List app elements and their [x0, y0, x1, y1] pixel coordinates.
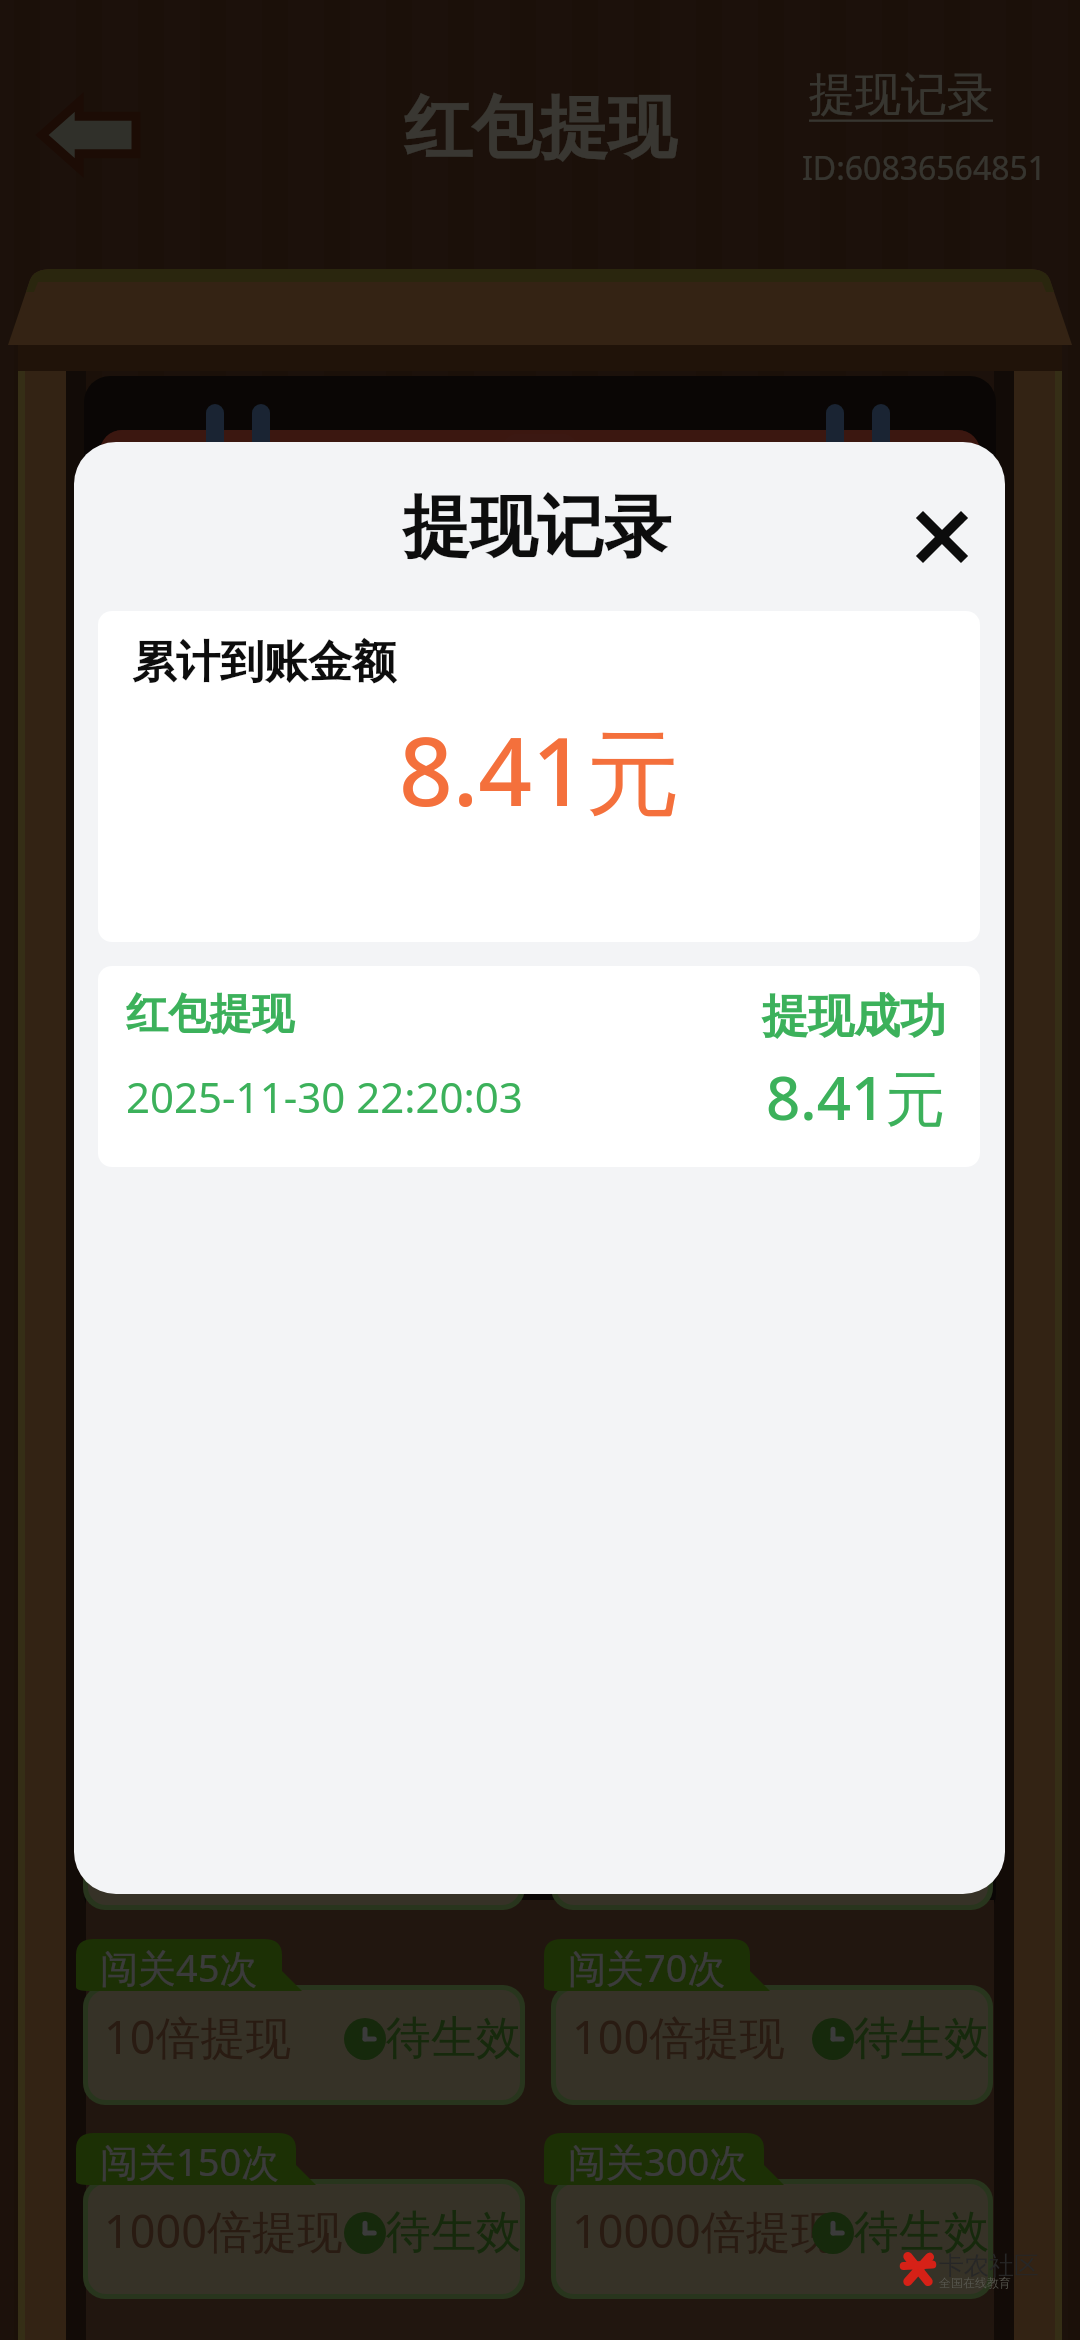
staticText: 待生效 — [854, 2204, 989, 2261]
staticText: 提现记录 — [403, 485, 671, 569]
button[interactable]: Back — [28, 86, 152, 184]
button[interactable]: Close — [892, 487, 992, 587]
staticText: 闯关45次 — [100, 1941, 258, 1993]
staticText: 1000倍提现 — [104, 2200, 342, 2261]
staticText: 闯关70次 — [568, 1941, 726, 1993]
button[interactable]: 100倍提现 — [546, 1939, 993, 2105]
button[interactable]: 10倍提现 — [78, 1939, 525, 2105]
staticText: 8.41元 — [766, 1056, 946, 1138]
staticText: 红包提现 — [126, 988, 294, 1041]
button[interactable]: 1000倍提现 — [78, 2133, 525, 2299]
button[interactable]: 提现记录 — [809, 66, 993, 124]
staticText: 闯关150次 — [100, 2135, 280, 2187]
staticText: 累计到账金额 — [132, 635, 396, 690]
staticText: 10倍提现 — [104, 2006, 291, 2067]
staticText: 全国在线教育 — [939, 2275, 1011, 2290]
staticText: 提现记录 — [809, 66, 993, 124]
button[interactable]: 10000倍提现 — [546, 2133, 993, 2299]
staticText: 10000倍提现 — [572, 2200, 836, 2261]
staticText: 红包提现 — [404, 86, 676, 172]
staticText: 100倍提现 — [572, 2006, 785, 2067]
staticText: 待生效 — [386, 2204, 521, 2261]
staticText: 2025-11-30 22:20:03 — [126, 1068, 523, 1125]
button[interactable]: 红包提现 — [98, 966, 980, 1167]
staticText: 提现成功 — [762, 988, 946, 1046]
staticText: 待生效 — [386, 2010, 521, 2067]
staticText: ID:60836564851 — [802, 146, 1047, 190]
staticText: 卡农社区 — [939, 2250, 1039, 2281]
staticText: 8.41元 — [399, 706, 680, 834]
staticText: 待生效 — [854, 2010, 989, 2067]
staticText: 闯关300次 — [568, 2135, 748, 2187]
